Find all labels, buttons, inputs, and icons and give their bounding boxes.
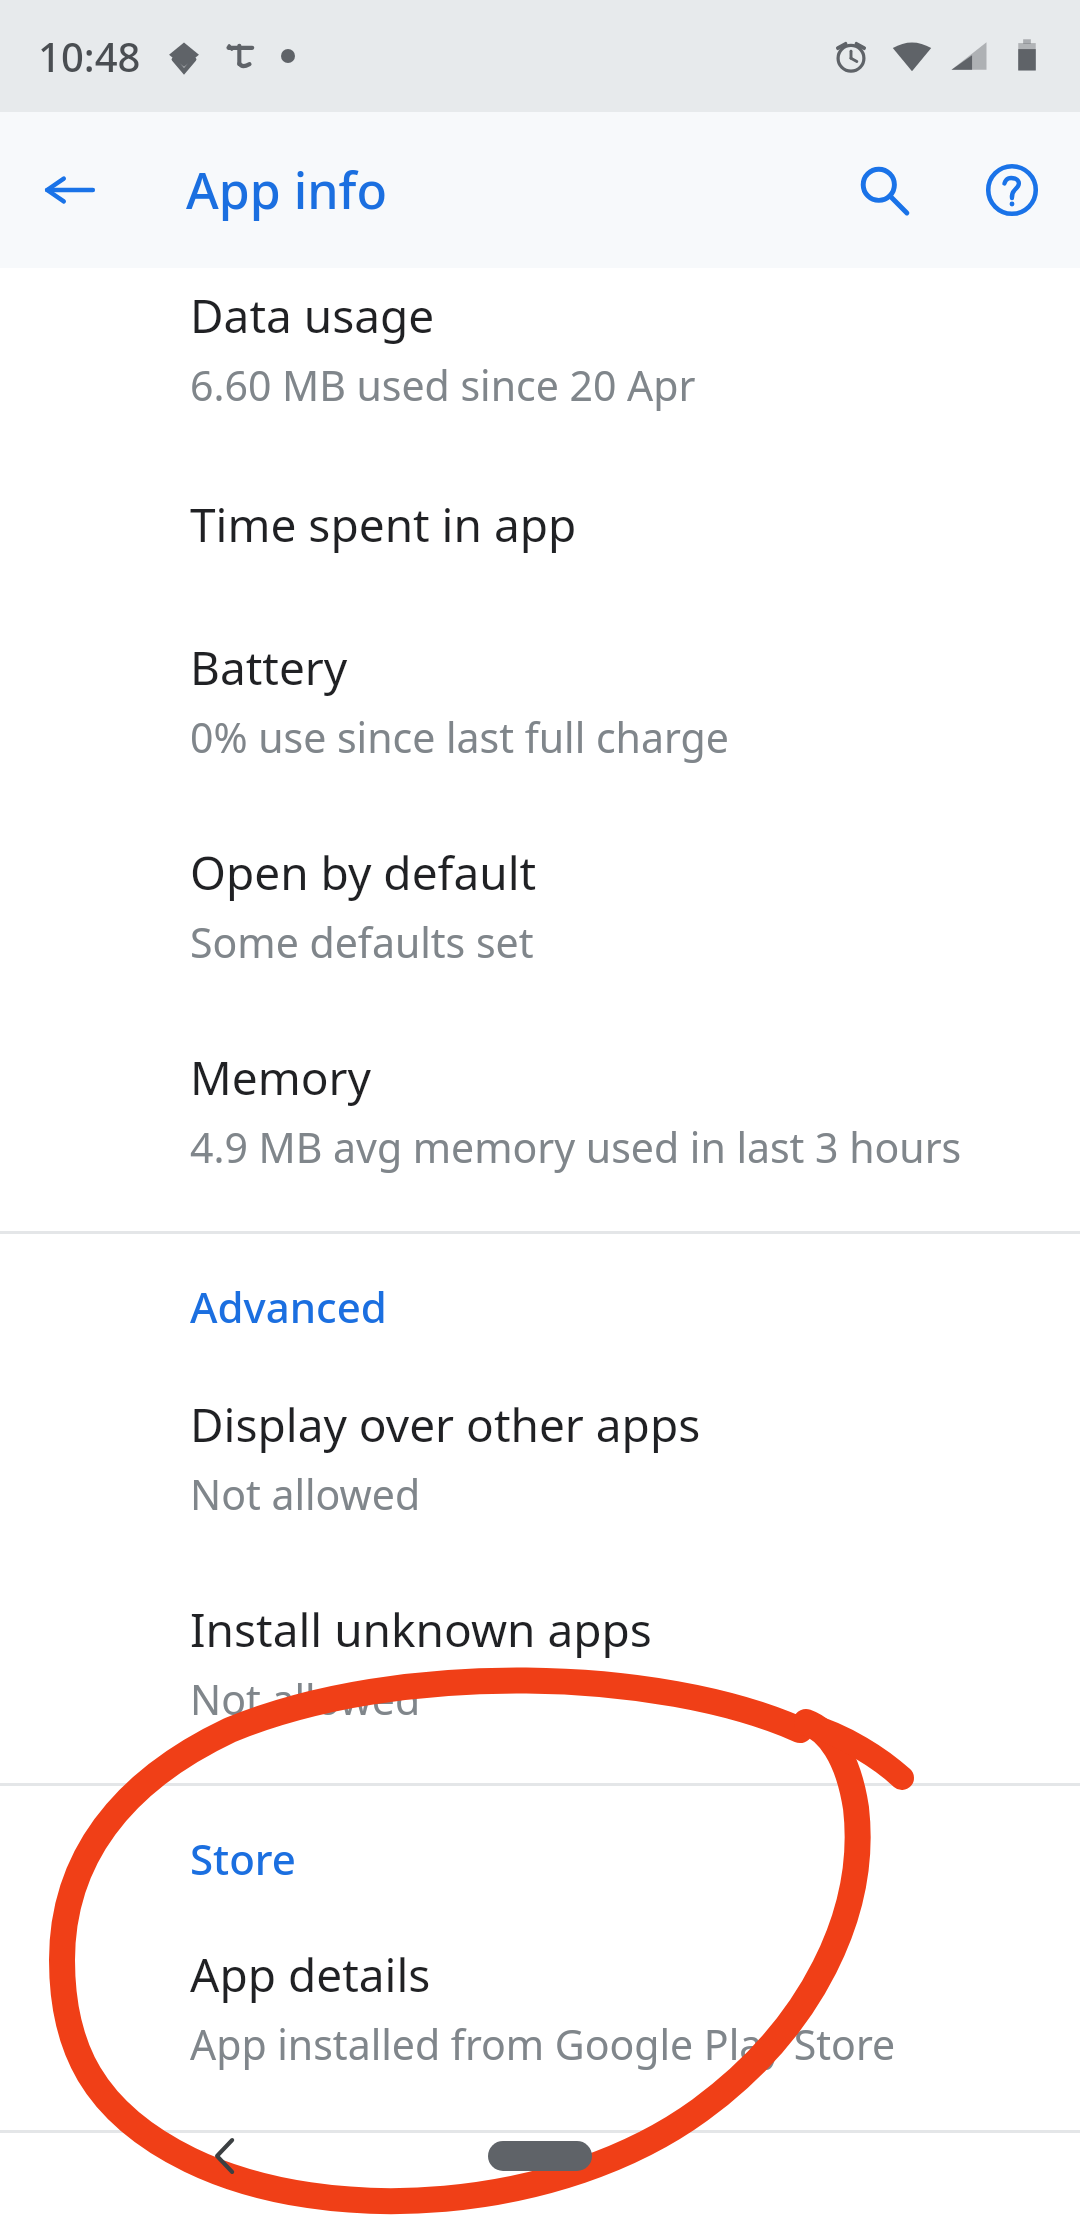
- button[interactable]: Install unknown apps: [0, 1578, 1080, 1783]
- button[interactable]: Help: [962, 140, 1062, 240]
- button[interactable]: Battery: [0, 616, 1080, 821]
- button[interactable]: Time spent in app: [0, 471, 1080, 616]
- button[interactable]: App details: [0, 1921, 1080, 2130]
- button[interactable]: Data usage: [0, 268, 1080, 471]
- button[interactable]: Search: [834, 140, 934, 240]
- staticText: App details: [190, 1943, 431, 2006]
- button[interactable]: Advanced: [0, 1234, 1080, 1369]
- button[interactable]: Display over other apps: [0, 1369, 1080, 1578]
- staticText: Not allowed: [190, 1671, 421, 1727]
- staticText: Data usage: [190, 284, 435, 347]
- staticText: Memory: [190, 1046, 371, 1109]
- button[interactable]: Open by default: [0, 821, 1080, 1026]
- staticText: Not allowed: [190, 1466, 421, 1522]
- staticText: 4.9 MB avg memory used in last 3 hours: [190, 1119, 962, 1175]
- staticText: Open by default: [190, 841, 537, 904]
- button[interactable]: Memory: [0, 1026, 1080, 1231]
- staticText: Advanced: [190, 1278, 387, 1335]
- staticText: Display over other apps: [190, 1393, 701, 1456]
- staticText: 6.60 MB used since 20 Apr: [190, 357, 696, 413]
- button[interactable]: Version 1.65.0: [0, 2133, 1080, 2218]
- staticText: 10:48: [38, 29, 141, 83]
- button[interactable]: Store: [0, 1786, 1080, 1921]
- button[interactable]: Back: [22, 142, 118, 238]
- staticText: 0% use since last full charge: [190, 709, 729, 765]
- staticText: Some defaults set: [190, 914, 534, 970]
- staticText: App installed from Google Play Store: [190, 2016, 896, 2072]
- staticText: Battery: [190, 636, 348, 699]
- staticText: Store: [190, 1830, 296, 1887]
- button[interactable]: Back: [180, 2111, 270, 2201]
- staticText: Install unknown apps: [190, 1598, 652, 1661]
- staticText: App info: [186, 156, 387, 224]
- button[interactable]: Home: [465, 2116, 615, 2196]
- staticText: Time spent in app: [190, 493, 577, 556]
